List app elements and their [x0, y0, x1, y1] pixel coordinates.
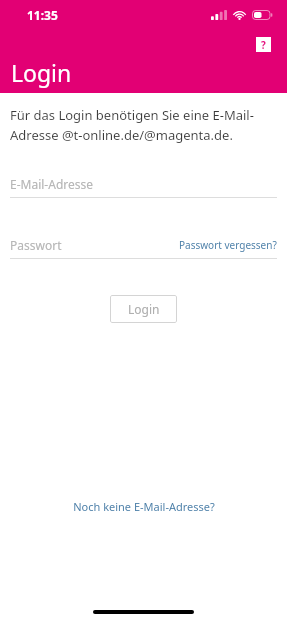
- staticText: Für das Login benötigen Sie eine E-Mail-…: [10, 106, 277, 144]
- staticText: ?: [261, 38, 266, 52]
- staticText: Passwort: [10, 237, 62, 253]
- staticText: E-Mail-Adresse: [10, 176, 94, 192]
- button[interactable]: Hilfe: [256, 37, 271, 52]
- staticText: Login: [128, 301, 160, 317]
- staticText: Login: [11, 57, 72, 88]
- staticText: Noch keine E-Mail-Adresse?: [73, 499, 215, 514]
- button[interactable]: Passwort vergessen?: [179, 232, 277, 258]
- button[interactable]: Passwort: [10, 232, 179, 258]
- button[interactable]: Noch keine E-Mail-Adresse?: [65, 494, 223, 519]
- button[interactable]: Login: [110, 295, 177, 323]
- staticText: Passwort vergessen?: [179, 238, 277, 252]
- staticText: 11:35: [27, 7, 58, 23]
- button[interactable]: E-Mail-Adresse: [10, 171, 277, 197]
